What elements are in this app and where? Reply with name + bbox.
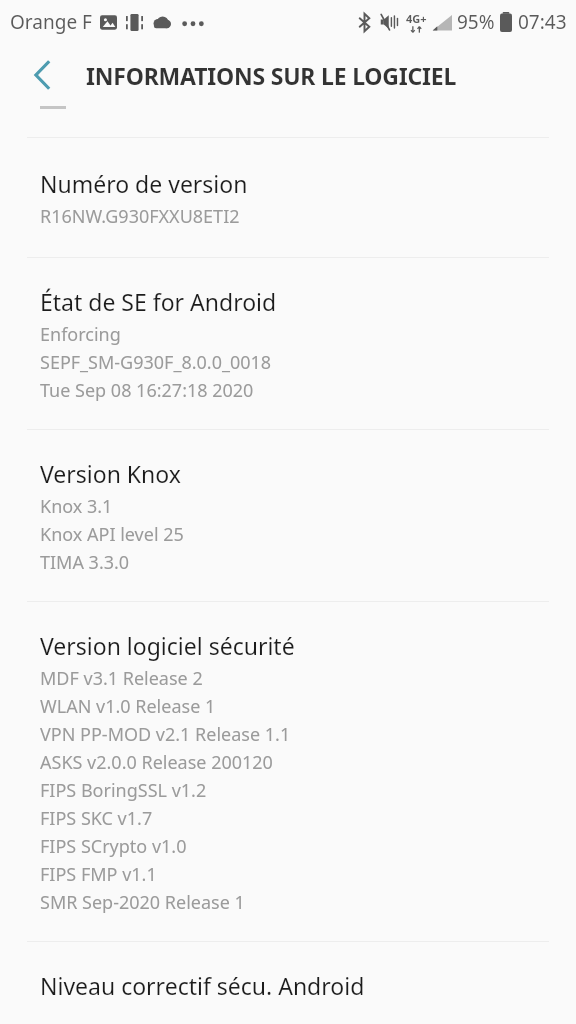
staticText: VPN PP-MOD v2.1 Release 1.1 (40, 722, 291, 747)
button[interactable]: État de SE for Android (0, 258, 576, 429)
staticText: Tue Sep 08 16:27:18 2020 (40, 378, 254, 403)
staticText: INFORMATIONS SUR LE LOGICIEL (86, 60, 457, 91)
button[interactable]: Numéro de version (0, 138, 576, 257)
staticText: FIPS FMP v1.1 (40, 862, 157, 887)
staticText: 95% (457, 9, 495, 35)
staticText: TIMA 3.3.0 (40, 550, 130, 575)
staticText: Knox 3.1 (40, 494, 113, 519)
staticText: Knox API level 25 (40, 522, 184, 547)
staticText: MDF v3.1 Release 2 (40, 666, 203, 691)
staticText: ASKS v2.0.0 Release 200120 (40, 750, 273, 775)
staticText: FIPS SKC v1.7 (40, 806, 153, 831)
button[interactable]: Niveau correctif sécu. Android (0, 942, 576, 1024)
staticText: SEPF_SM-G930F_8.0.0_0018 (40, 350, 272, 375)
staticText: WLAN v1.0 Release 1 (40, 694, 216, 719)
staticText: Niveau correctif sécu. Android (40, 970, 365, 998)
button[interactable]: Version logiciel sécurité (0, 602, 576, 941)
staticText: FIPS BoringSSL v1.2 (40, 778, 207, 803)
staticText: État de SE for Android (40, 286, 277, 317)
button[interactable]: Version Knox (0, 430, 576, 601)
button[interactable]: Back (16, 49, 68, 101)
staticText: Orange F (10, 9, 92, 35)
staticText: Version Knox (40, 458, 181, 489)
staticText: Enforcing (40, 322, 121, 347)
staticText: 4G+ (406, 11, 427, 26)
staticText: R16NW.G930FXXU8ETI2 (40, 204, 240, 229)
staticText: Numéro de version (40, 168, 248, 199)
staticText: SMR Sep-2020 Release 1 (40, 890, 245, 915)
button[interactable] (0, 106, 576, 112)
staticText: FIPS SCrypto v1.0 (40, 834, 187, 859)
staticText: Version logiciel sécurité (40, 630, 295, 661)
staticText: 07:43 (518, 9, 567, 35)
